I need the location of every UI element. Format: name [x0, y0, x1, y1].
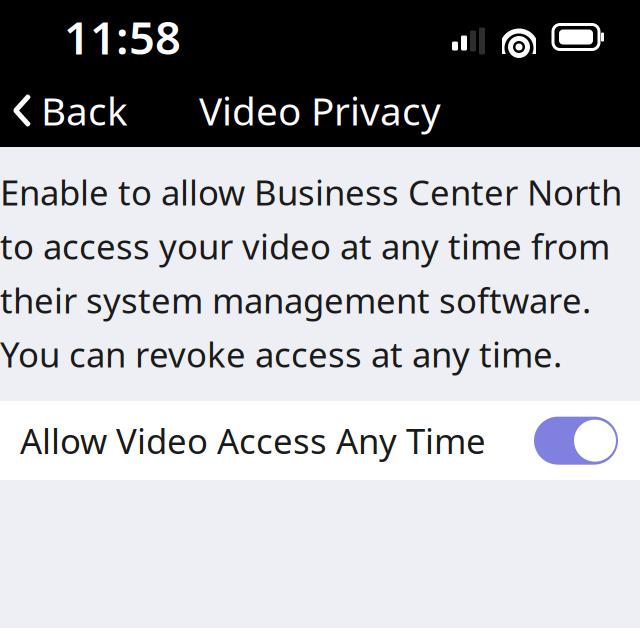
staticText: Enable to allow Business Center North to…	[0, 169, 622, 377]
staticText: Video Privacy	[199, 85, 441, 136]
button[interactable]: Allow Video Access Any Time	[0, 401, 640, 480]
button[interactable]: Back	[0, 73, 142, 148]
staticText: Back	[41, 85, 128, 136]
staticText: 11:58	[64, 7, 181, 67]
staticText: Allow Video Access Any Time	[20, 418, 486, 464]
